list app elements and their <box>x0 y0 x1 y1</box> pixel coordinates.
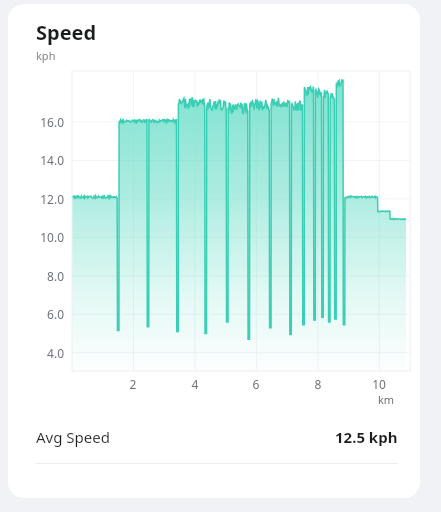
staticText: 2 <box>119 376 147 392</box>
staticText: 12.0 <box>24 191 64 207</box>
staticText: 16.0 <box>24 114 64 130</box>
button[interactable]: Avg Speed <box>8 411 420 463</box>
staticText: 12.5 kph <box>335 427 398 447</box>
staticText: 6.0 <box>24 306 64 322</box>
staticText: kph <box>36 48 56 63</box>
staticText: 10 <box>365 376 393 392</box>
staticText: 4 <box>181 376 209 392</box>
staticText: 10.0 <box>24 229 64 245</box>
staticText: Avg Speed <box>36 427 110 447</box>
staticText: 4.0 <box>24 345 64 361</box>
staticText: 6 <box>242 376 270 392</box>
staticText: 8 <box>304 376 332 392</box>
staticText: Speed <box>36 19 97 46</box>
staticText: km <box>372 392 400 407</box>
staticText: 8.0 <box>24 268 64 284</box>
staticText: 14.0 <box>24 152 64 168</box>
